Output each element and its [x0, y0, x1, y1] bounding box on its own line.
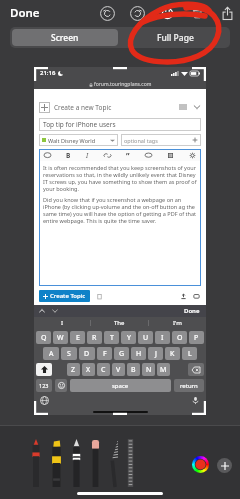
staticText: Done	[184, 307, 200, 315]
button[interactable]: Undo	[98, 4, 116, 22]
button[interactable]: F	[97, 347, 112, 360]
button[interactable]: X	[82, 363, 95, 376]
staticText: X	[86, 365, 91, 375]
button[interactable]: Walt Disney World	[39, 134, 118, 146]
button[interactable]: G	[114, 347, 129, 360]
button[interactable]: Full Page	[120, 27, 230, 48]
staticText: K	[170, 349, 175, 359]
button[interactable]: Q	[36, 331, 51, 344]
button[interactable]: Z	[67, 363, 80, 376]
button[interactable]: B	[65, 150, 72, 161]
button[interactable]: Link	[103, 151, 112, 160]
button[interactable]: J	[148, 347, 163, 360]
button[interactable]: Code	[144, 151, 153, 160]
staticText: Full Page	[157, 32, 194, 44]
button[interactable]: Backspace	[188, 363, 204, 376]
staticText: J	[155, 349, 157, 359]
staticText: Walt Disney World	[48, 137, 96, 144]
button[interactable]: V	[112, 363, 125, 376]
staticText: Z	[71, 365, 76, 375]
button[interactable]: W	[53, 331, 68, 344]
button[interactable]: optional tags	[121, 134, 201, 146]
button[interactable]: Next field	[51, 307, 59, 315]
button[interactable]: Markup tools	[158, 4, 176, 22]
staticText: 21:16	[40, 69, 56, 77]
staticText: L	[188, 349, 192, 359]
button[interactable]: B	[127, 363, 140, 376]
button[interactable]: R	[87, 331, 102, 344]
button[interactable]: Discard draft	[95, 292, 104, 301]
button[interactable]: S	[61, 347, 77, 360]
button[interactable]: Delete	[188, 4, 206, 22]
staticText: Done	[10, 5, 40, 21]
button[interactable]: Preview	[192, 292, 201, 301]
button[interactable]: 123	[36, 379, 52, 392]
button[interactable]: T	[104, 331, 119, 344]
button[interactable]: Done	[6, 1, 44, 25]
button[interactable]: Shift	[36, 363, 52, 376]
button[interactable]: Done	[182, 305, 202, 317]
button[interactable]: L	[182, 347, 197, 360]
button[interactable]: Y	[121, 331, 136, 344]
staticText: B	[66, 151, 71, 160]
button[interactable]: Upload image	[166, 151, 175, 160]
button[interactable]: Ruler	[126, 439, 135, 487]
button[interactable]: E	[70, 331, 85, 344]
button[interactable]: Create Topic	[39, 290, 90, 302]
button[interactable]: Change keyboard	[40, 396, 49, 405]
button[interactable]: Dictate	[191, 396, 200, 405]
button[interactable]: M	[157, 363, 170, 376]
button[interactable]: Emoji	[55, 379, 67, 392]
button[interactable]: I'm	[149, 317, 206, 329]
staticText: return	[180, 382, 198, 390]
staticText: Create Topic	[50, 292, 86, 300]
button[interactable]: Share	[218, 4, 236, 22]
button[interactable]: return	[174, 379, 204, 392]
button[interactable]: Collapse	[193, 103, 201, 111]
button[interactable]: The	[91, 317, 148, 329]
button[interactable]: Lasso	[109, 439, 120, 487]
button[interactable]: I	[155, 331, 170, 344]
button[interactable]: Add	[217, 458, 232, 473]
button[interactable]: D	[79, 347, 95, 360]
staticText: forum.touringplans.com	[94, 81, 152, 88]
staticText: R	[92, 333, 97, 343]
staticText: Y	[127, 333, 131, 343]
button[interactable]: Redo	[128, 4, 146, 22]
staticText: optional tags	[124, 137, 158, 144]
staticText: V	[116, 365, 121, 375]
staticText: I	[161, 333, 164, 343]
button[interactable]: U	[138, 331, 153, 344]
button[interactable]: I	[34, 317, 90, 329]
button[interactable]: Highlighter	[50, 439, 63, 487]
button[interactable]: Emoji	[43, 151, 52, 160]
button[interactable]: H	[131, 347, 146, 360]
button[interactable]: Top tip for iPhone users	[39, 118, 201, 131]
button[interactable]: Eraser	[90, 439, 101, 487]
button[interactable]: C	[97, 363, 110, 376]
button[interactable]: space	[70, 379, 171, 392]
button[interactable]: ”	[125, 149, 131, 161]
staticText: space	[112, 382, 129, 390]
staticText: N	[146, 365, 152, 375]
staticText: M	[160, 365, 167, 375]
button[interactable]: Add	[39, 102, 50, 113]
staticText: Screen	[51, 32, 79, 44]
button[interactable]: Upload	[179, 292, 188, 301]
button[interactable]: Color	[192, 456, 209, 473]
button[interactable]: N	[142, 363, 155, 376]
button[interactable]: Screen	[12, 29, 118, 46]
staticText: Q	[41, 333, 47, 343]
button[interactable]: A	[43, 347, 59, 360]
button[interactable]: Previous field	[38, 307, 46, 315]
button[interactable]: O	[172, 331, 187, 344]
button[interactable]: K	[165, 347, 180, 360]
button[interactable]: Settings	[188, 151, 197, 160]
staticText: 123	[39, 382, 49, 389]
button[interactable]: I	[85, 150, 90, 161]
button[interactable]: Pen	[30, 439, 42, 487]
staticText: ”	[126, 150, 130, 160]
button[interactable]: Menu	[179, 103, 187, 111]
button[interactable]: P	[189, 331, 204, 344]
button[interactable]: Pencil	[71, 439, 82, 487]
